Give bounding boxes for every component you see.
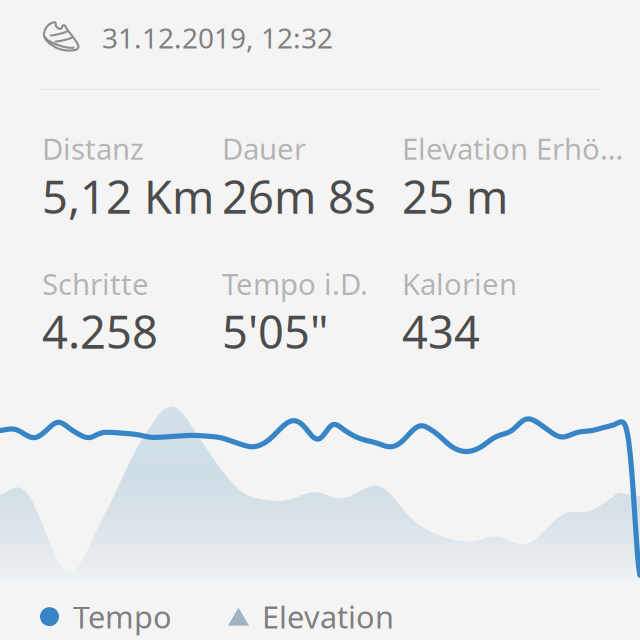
staticText: 31.12.2019, 12:32 xyxy=(102,19,333,56)
staticText: 4.258 xyxy=(42,301,158,361)
staticText: 434 xyxy=(402,301,480,361)
staticText: 5'05" xyxy=(222,301,328,361)
button[interactable]: Elevation xyxy=(228,596,394,637)
staticText: Tempo xyxy=(73,596,172,637)
staticText: Kalorien xyxy=(402,264,517,303)
staticText: Schritte xyxy=(42,264,149,303)
button[interactable]: Tempo xyxy=(40,596,172,637)
staticText: 5,12 Km xyxy=(42,166,214,226)
staticText: 25 m xyxy=(402,166,508,226)
staticText: Dauer xyxy=(222,129,306,168)
staticText: Distanz xyxy=(42,129,144,168)
staticText: Tempo i.D. xyxy=(222,264,368,303)
staticText: 26m 8s xyxy=(222,166,376,226)
staticText: Elevation Erhö… xyxy=(402,129,623,168)
staticText: Elevation xyxy=(262,596,394,637)
